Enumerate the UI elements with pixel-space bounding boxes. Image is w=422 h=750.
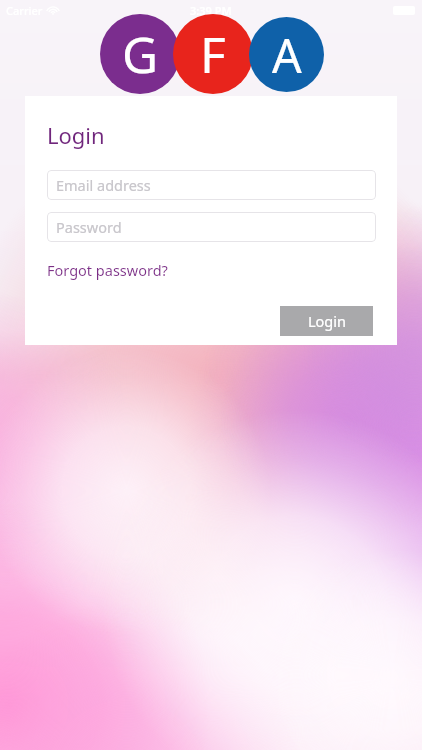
button[interactable]: Email address (47, 170, 376, 200)
staticText: F (200, 20, 226, 88)
staticText: Password (56, 217, 122, 237)
staticText: Login (308, 311, 346, 331)
staticText: Email address (56, 175, 151, 195)
button[interactable]: Login (280, 306, 373, 336)
button[interactable]: Password (47, 212, 376, 242)
staticText: Login (47, 120, 105, 150)
staticText: 3:39 PM (190, 3, 232, 18)
button[interactable]: Forgot password? (47, 260, 168, 280)
staticText: Forgot password? (47, 260, 168, 280)
staticText: Carrier (6, 3, 43, 18)
staticText: A (272, 23, 302, 86)
staticText: G (122, 20, 159, 88)
